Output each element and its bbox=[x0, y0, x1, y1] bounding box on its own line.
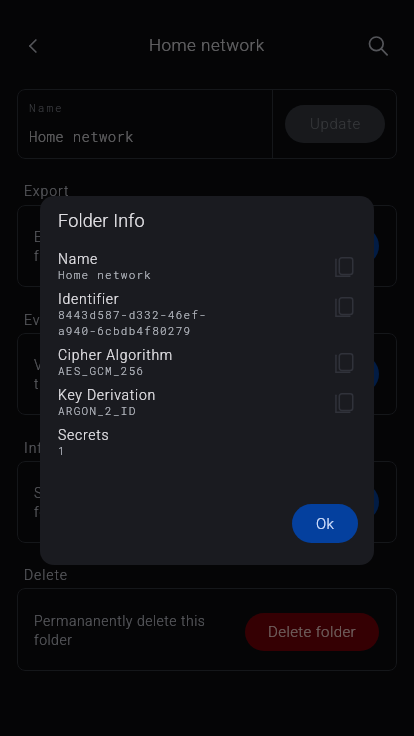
button[interactable]: Copy Key Derivation bbox=[328, 387, 358, 417]
staticText: Name bbox=[58, 251, 99, 267]
button[interactable]: Delete folder bbox=[245, 613, 379, 651]
staticText: Export bbox=[24, 183, 70, 199]
button[interactable]: Copy Cipher Algorithm bbox=[328, 347, 358, 377]
button[interactable]: Info bbox=[245, 483, 379, 521]
staticText: Folder Info bbox=[58, 210, 145, 231]
staticText: Delete bbox=[24, 567, 68, 583]
staticText: Key Derivation bbox=[58, 387, 156, 403]
staticText: Info bbox=[24, 440, 52, 456]
staticText: Info bbox=[298, 493, 326, 511]
button[interactable]: Copy Identifier bbox=[328, 291, 358, 321]
button[interactable]: Copy Name bbox=[328, 251, 358, 281]
button[interactable]: Export bbox=[245, 227, 379, 265]
staticText: Cipher Algorithm bbox=[58, 347, 173, 363]
button[interactable]: Back bbox=[13, 26, 53, 66]
staticText: Ok bbox=[316, 515, 335, 533]
staticText: Home network bbox=[29, 127, 135, 145]
staticText: ARGON_2_ID bbox=[58, 403, 137, 418]
staticText: Home network bbox=[58, 267, 153, 282]
staticText: Home network bbox=[149, 35, 265, 55]
staticText: 1 bbox=[58, 443, 66, 458]
staticText: Delete folder bbox=[268, 623, 357, 641]
staticText: Identifier bbox=[58, 291, 120, 307]
staticText: Update bbox=[310, 115, 361, 133]
staticText: 8443d587-d332-46ef- a940-6cbdb4f80279 bbox=[58, 307, 208, 338]
button[interactable]: Search bbox=[358, 26, 398, 66]
staticText: AES_GCM_256 bbox=[58, 363, 145, 378]
staticText: Export folder to a file bbox=[34, 229, 234, 264]
staticText: Name bbox=[29, 100, 64, 115]
staticText: Show info about folder bbox=[34, 485, 234, 520]
button[interactable]: Events bbox=[245, 355, 379, 393]
staticText: View events that this folder bbox=[34, 357, 234, 392]
button[interactable]: Update bbox=[285, 105, 385, 143]
staticText: Permananently delete this folder bbox=[34, 613, 234, 648]
staticText: Secrets bbox=[58, 427, 110, 443]
button[interactable]: Ok bbox=[292, 504, 358, 543]
staticText: Event log bbox=[24, 312, 89, 328]
